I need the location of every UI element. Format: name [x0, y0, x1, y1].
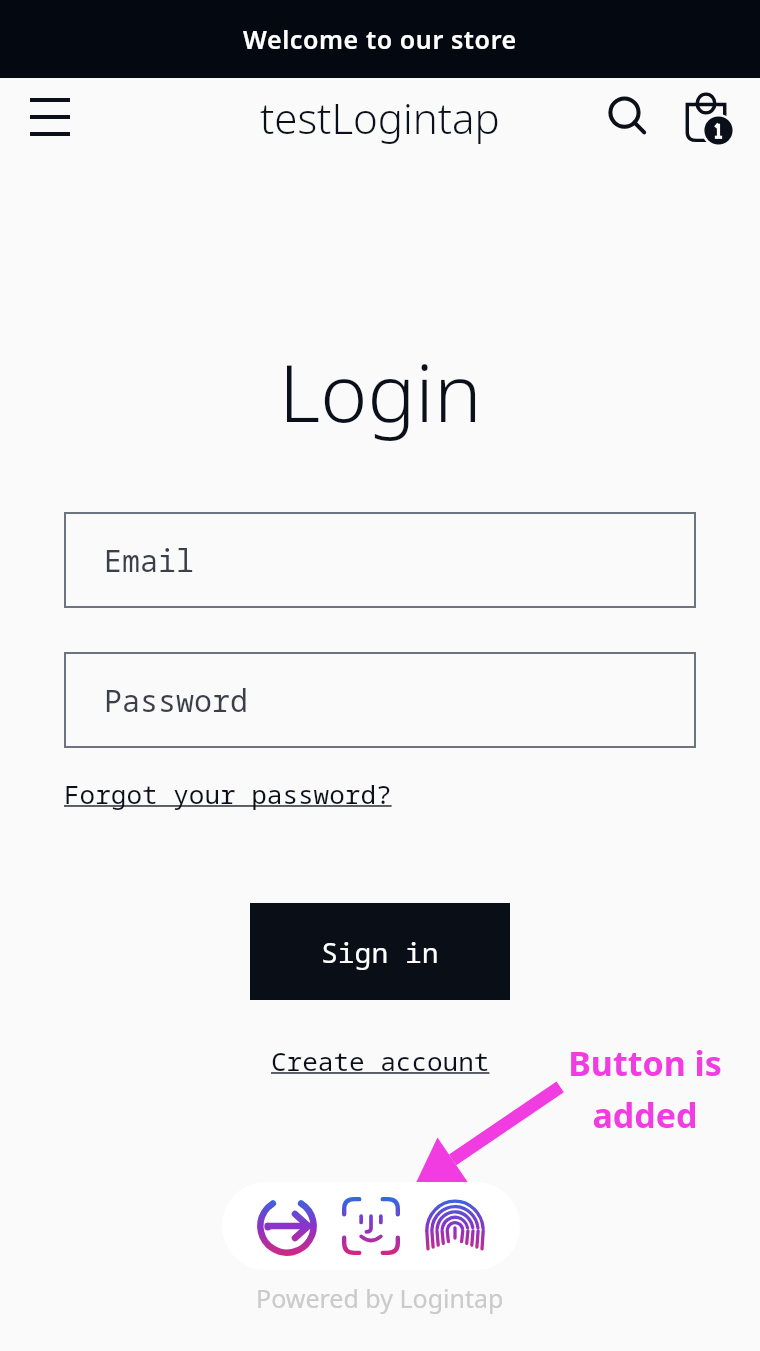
staticText: Forgot your password?: [64, 776, 392, 811]
staticText: Sign in: [321, 933, 439, 971]
button[interactable]: Sign in with fingerprint: [413, 1184, 497, 1268]
staticText: added: [592, 1092, 698, 1138]
staticText: Password: [104, 680, 248, 721]
button[interactable]: Forgot your password?: [64, 776, 392, 811]
staticText: Create account: [271, 1043, 490, 1078]
button[interactable]: Cart, 1 item: [674, 85, 738, 149]
button[interactable]: Password: [64, 652, 696, 748]
staticText: testLogintap: [260, 89, 500, 146]
button[interactable]: Email: [64, 512, 696, 608]
button[interactable]: Sign in with Face ID: [329, 1184, 413, 1268]
staticText: Powered by Logintap: [256, 1281, 504, 1315]
button[interactable]: Menu: [18, 85, 82, 149]
button[interactable]: Search: [600, 89, 656, 145]
button[interactable]: Create account: [271, 1043, 490, 1078]
staticText: Login: [279, 336, 482, 445]
button[interactable]: Sign in with Logintap: [245, 1184, 329, 1268]
staticText: Button is: [568, 1040, 722, 1086]
button[interactable]: Sign in: [250, 903, 510, 1000]
staticText: Welcome to our store: [243, 22, 517, 56]
staticText: Email: [104, 540, 194, 581]
